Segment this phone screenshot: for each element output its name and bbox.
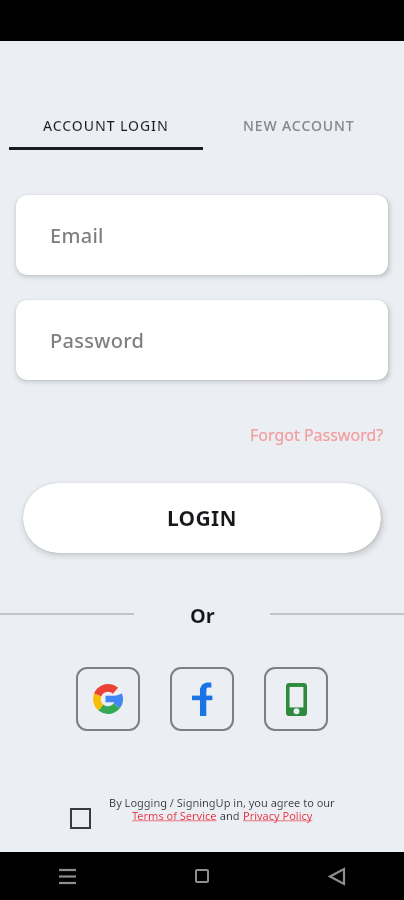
- button[interactable]: Privacy Policy: [243, 808, 313, 823]
- staticText: LOGIN: [167, 504, 237, 533]
- button[interactable]: Sign in with Facebook: [170, 667, 234, 731]
- button[interactable]: NEW ACCOUNT: [202, 102, 395, 148]
- staticText: ACCOUNT LOGIN: [43, 116, 169, 135]
- staticText: and: [217, 808, 243, 823]
- staticText: Email: [50, 222, 104, 249]
- button[interactable]: Home: [134, 852, 269, 900]
- staticText: By Logging / SigningUp in, you agree to …: [109, 795, 335, 810]
- staticText: Or: [190, 602, 215, 626]
- button[interactable]: Email: [16, 195, 388, 275]
- button[interactable]: Forgot Password?: [250, 424, 404, 446]
- button[interactable]: Accept terms: [70, 808, 91, 829]
- button[interactable]: LOGIN: [23, 483, 381, 553]
- button[interactable]: Sign in with Google: [76, 667, 140, 731]
- button[interactable]: Password: [16, 300, 388, 380]
- staticText: Password: [50, 327, 145, 354]
- staticText: NEW ACCOUNT: [243, 116, 355, 135]
- button[interactable]: Back: [269, 852, 404, 900]
- button[interactable]: Terms of Service: [132, 808, 217, 823]
- button[interactable]: ACCOUNT LOGIN: [9, 102, 202, 148]
- button[interactable]: Recents: [0, 852, 134, 900]
- button[interactable]: Sign in with Phone: [264, 667, 328, 731]
